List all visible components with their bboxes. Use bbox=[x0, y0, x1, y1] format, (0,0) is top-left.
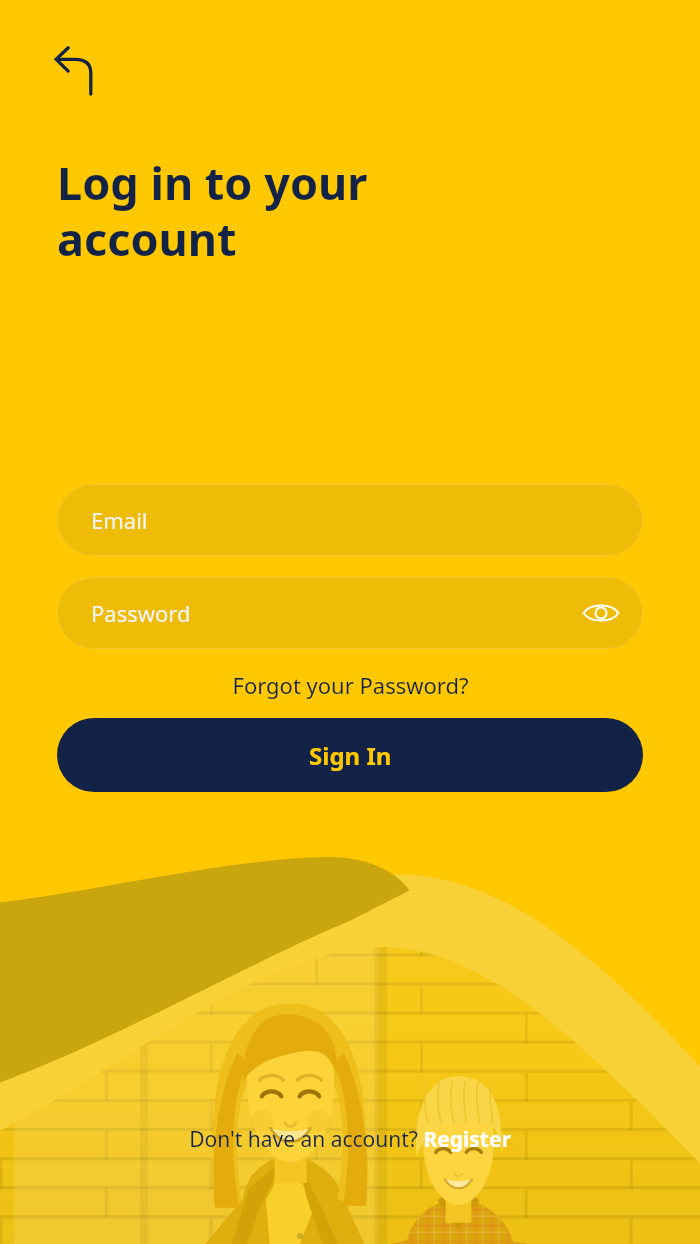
button[interactable]: Show password bbox=[579, 591, 623, 635]
button[interactable]: Email bbox=[57, 484, 643, 556]
button[interactable]: Sign In bbox=[57, 718, 643, 792]
button[interactable]: Forgot your Password? bbox=[224, 668, 477, 702]
staticText: Password bbox=[91, 598, 191, 628]
staticText: Sign In bbox=[309, 739, 392, 772]
staticText: Log in to your account bbox=[57, 152, 368, 269]
staticText: Email bbox=[91, 505, 148, 535]
button[interactable]: Don't have an account? Register bbox=[179, 1121, 521, 1158]
staticText: Don't have an account? Register bbox=[189, 1125, 511, 1154]
staticText: Forgot your Password? bbox=[232, 670, 469, 700]
button[interactable]: Password bbox=[57, 577, 643, 649]
button[interactable]: Back bbox=[44, 42, 106, 104]
